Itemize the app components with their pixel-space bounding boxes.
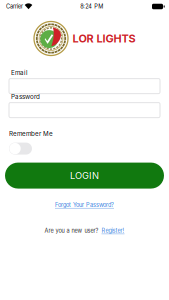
button[interactable]: Register! [101, 227, 124, 234]
button[interactable]: Forgot Your Password? [55, 202, 114, 208]
staticText: Are you a new user? [44, 227, 98, 234]
staticText: Password [11, 93, 40, 101]
staticText: Email [11, 69, 28, 77]
staticText: 8:24 PM [80, 3, 103, 10]
staticText: Forgot Your Password? [55, 202, 114, 208]
staticText: Remember Me [9, 130, 53, 138]
button[interactable]: LOGIN [0, 163, 169, 189]
staticText: LOGIN [70, 170, 99, 181]
staticText: Register! [101, 227, 124, 234]
staticText: Carrier [6, 3, 23, 10]
button[interactable]: Remember Me [0, 130, 169, 155]
staticText: LOR LIGHTS [72, 32, 135, 45]
